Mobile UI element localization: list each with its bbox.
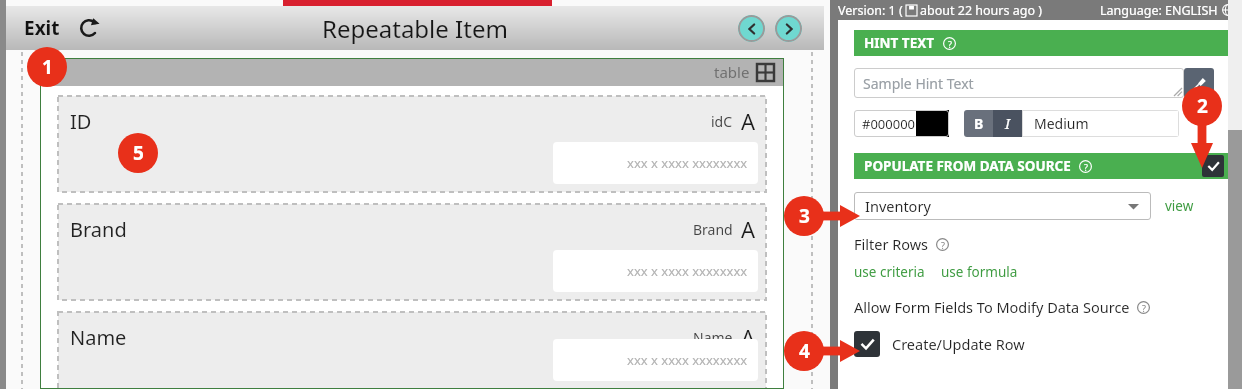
staticText: ? bbox=[1142, 302, 1146, 314]
staticText: 2 bbox=[1197, 93, 1208, 119]
staticText: POPULATE FROM DATA SOURCE bbox=[864, 157, 1071, 175]
staticText: Create/Update Row bbox=[892, 334, 1025, 354]
staticText: ? bbox=[941, 239, 945, 251]
button[interactable]: #000000 bbox=[854, 110, 949, 137]
button[interactable]: I bbox=[993, 110, 1022, 137]
staticText: A bbox=[741, 322, 756, 352]
button[interactable]: Brand bbox=[58, 204, 766, 300]
button[interactable]: Create/Update Row bbox=[854, 331, 1025, 357]
button[interactable]: B bbox=[964, 110, 993, 137]
staticText: #000000 bbox=[862, 115, 916, 133]
button[interactable]: Refresh bbox=[76, 15, 102, 41]
staticText: ? bbox=[1084, 161, 1088, 173]
staticText: xxx x xxxx xxxxxxxx bbox=[627, 154, 748, 172]
staticText: ID bbox=[70, 108, 92, 135]
staticText: view bbox=[1165, 197, 1194, 215]
staticText: Language: ENGLISH bbox=[1100, 2, 1218, 19]
button[interactable]: Name bbox=[58, 312, 766, 389]
staticText: HINT TEXT bbox=[864, 34, 935, 52]
button[interactable]: ID bbox=[58, 96, 766, 192]
staticText: Inventory bbox=[865, 196, 931, 216]
button[interactable]: Sample Hint Text bbox=[854, 68, 1184, 98]
staticText: Name bbox=[693, 328, 733, 347]
button[interactable]: xxx x xxxx xxxxxxxx bbox=[553, 250, 758, 292]
staticText: B bbox=[974, 114, 984, 133]
button[interactable]: HINT TEXT bbox=[864, 34, 956, 52]
staticText: Brand bbox=[70, 216, 127, 243]
button[interactable]: xxx x xxxx xxxxxxxx bbox=[553, 142, 758, 184]
button[interactable]: Exit bbox=[20, 11, 64, 45]
staticText: idC bbox=[711, 112, 733, 131]
staticText: Version: 1 ( bbox=[838, 2, 903, 19]
button[interactable]: use criteria bbox=[854, 263, 925, 281]
staticText: Medium bbox=[1034, 114, 1089, 133]
staticText: ? bbox=[948, 38, 952, 50]
button[interactable]: Previous bbox=[738, 15, 765, 42]
staticText: I bbox=[1005, 114, 1011, 133]
staticText: xxx x xxxx xxxxxxxx bbox=[627, 262, 748, 280]
staticText: Filter Rows bbox=[854, 234, 929, 254]
staticText: A bbox=[741, 214, 756, 244]
staticText: use criteria bbox=[854, 263, 925, 281]
staticText: about 22 hours ago ) bbox=[920, 2, 1042, 19]
button[interactable]: Inventory bbox=[854, 192, 1151, 220]
button[interactable]: Next bbox=[775, 15, 802, 42]
staticText: Exit bbox=[24, 15, 60, 41]
staticText: A bbox=[741, 106, 756, 136]
staticText: Brand bbox=[693, 220, 733, 239]
staticText: 1 bbox=[42, 54, 53, 80]
button[interactable]: table bbox=[714, 62, 774, 82]
staticText: table bbox=[714, 62, 750, 82]
button[interactable]: POPULATE FROM DATA SOURCE bbox=[864, 157, 1092, 175]
button[interactable]: view bbox=[1165, 197, 1194, 215]
staticText: xxx x xxxx xxxxxxxx bbox=[627, 351, 748, 369]
staticText: Allow Form Fields To Modify Data Source bbox=[854, 297, 1130, 317]
staticText: Repeatable Item bbox=[322, 12, 508, 45]
staticText: Sample Hint Text bbox=[863, 74, 974, 93]
button[interactable]: Medium bbox=[1022, 110, 1179, 137]
button[interactable]: Enabled bbox=[1202, 155, 1224, 177]
button[interactable]: xxx x xxxx xxxxxxxx bbox=[553, 339, 758, 381]
staticText: 3 bbox=[799, 203, 810, 229]
button[interactable]: use formula bbox=[941, 263, 1018, 281]
button[interactable]: Insert variable bbox=[1184, 68, 1214, 98]
staticText: use formula bbox=[941, 263, 1018, 281]
staticText: 4 bbox=[799, 338, 810, 364]
staticText: Name bbox=[70, 324, 127, 351]
staticText: 5 bbox=[133, 140, 144, 166]
